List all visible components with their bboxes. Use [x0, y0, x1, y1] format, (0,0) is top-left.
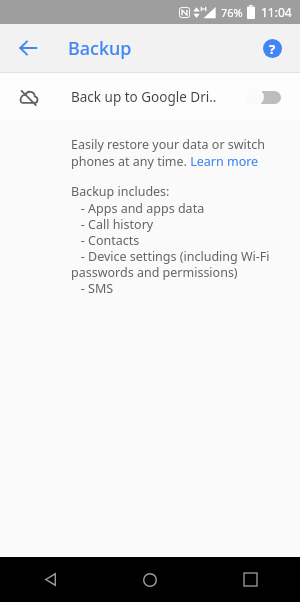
staticText: 11:04: [261, 4, 292, 20]
button[interactable]: Back up to Google Dri..: [0, 73, 300, 120]
button[interactable]: Back: [8, 28, 48, 68]
button[interactable]: Home: [100, 557, 200, 602]
button[interactable]: Back: [0, 557, 100, 602]
staticText: Easily restore your data or switch phone…: [71, 136, 286, 169]
button[interactable]: Recents: [200, 557, 300, 602]
staticText: Backup: [68, 36, 132, 61]
button[interactable]: Help: [252, 28, 292, 68]
staticText: 76%: [221, 5, 243, 20]
staticText: Back up to Google Dri..: [71, 88, 217, 106]
staticText: ?: [269, 40, 276, 58]
staticText: Backup includes: - Apps and apps data - …: [71, 183, 286, 296]
button[interactable]: Back up to Google Drive toggle: [246, 83, 286, 111]
